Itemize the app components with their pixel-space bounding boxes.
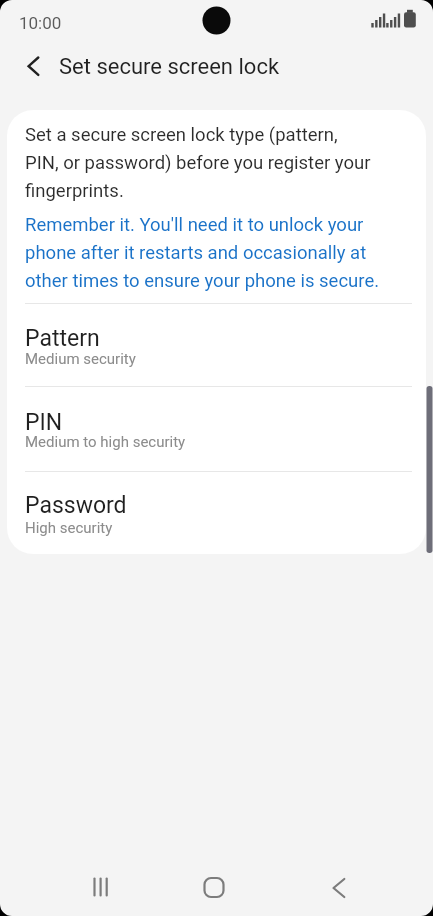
staticText: fingerprints. (25, 180, 124, 202)
staticText: phone after it restarts and occasionally… (25, 242, 367, 264)
staticText: Remember it. You'll need it to unlock yo… (25, 214, 364, 236)
staticText: Medium security (25, 350, 136, 368)
staticText: High security (25, 519, 113, 537)
staticText: Set a secure screen lock type (pattern, (25, 124, 338, 146)
button[interactable] (7, 387, 426, 471)
button[interactable] (314, 863, 362, 911)
staticText: 10:00 (19, 13, 62, 33)
staticText: Pattern (25, 325, 100, 352)
staticText: Medium to high security (25, 433, 186, 451)
button[interactable] (7, 472, 426, 554)
staticText: PIN (25, 409, 63, 436)
button[interactable] (7, 304, 426, 386)
button[interactable] (9, 42, 57, 90)
staticText: PIN, or password) before you register yo… (25, 152, 371, 174)
staticText: Set secure screen lock (59, 54, 280, 80)
staticText: Password (25, 492, 127, 519)
button[interactable] (190, 863, 238, 911)
staticText: other times to ensure your phone is secu… (25, 270, 380, 292)
button[interactable] (76, 863, 124, 911)
